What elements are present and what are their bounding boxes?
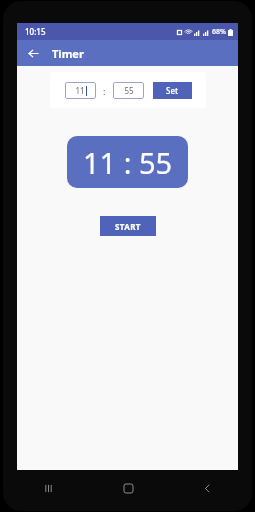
staticText: 11 : 55 [83,143,173,182]
staticText: 68% [212,27,226,37]
button[interactable]: Back [24,44,42,62]
button[interactable]: Set [153,82,192,99]
button[interactable]: Recent apps [35,475,61,501]
staticText: 10:15 [25,26,46,37]
button[interactable]: 55 [113,82,144,99]
staticText: : [103,85,106,97]
staticText: Set [166,85,179,96]
button[interactable]: Home [115,475,141,501]
staticText: 55 [124,85,134,96]
button[interactable]: 11 [65,82,96,99]
button[interactable]: Back [194,475,220,501]
staticText: Timer [52,46,84,61]
staticText: START [115,221,141,232]
staticText: 11 [75,85,85,96]
button[interactable]: START [100,216,156,236]
